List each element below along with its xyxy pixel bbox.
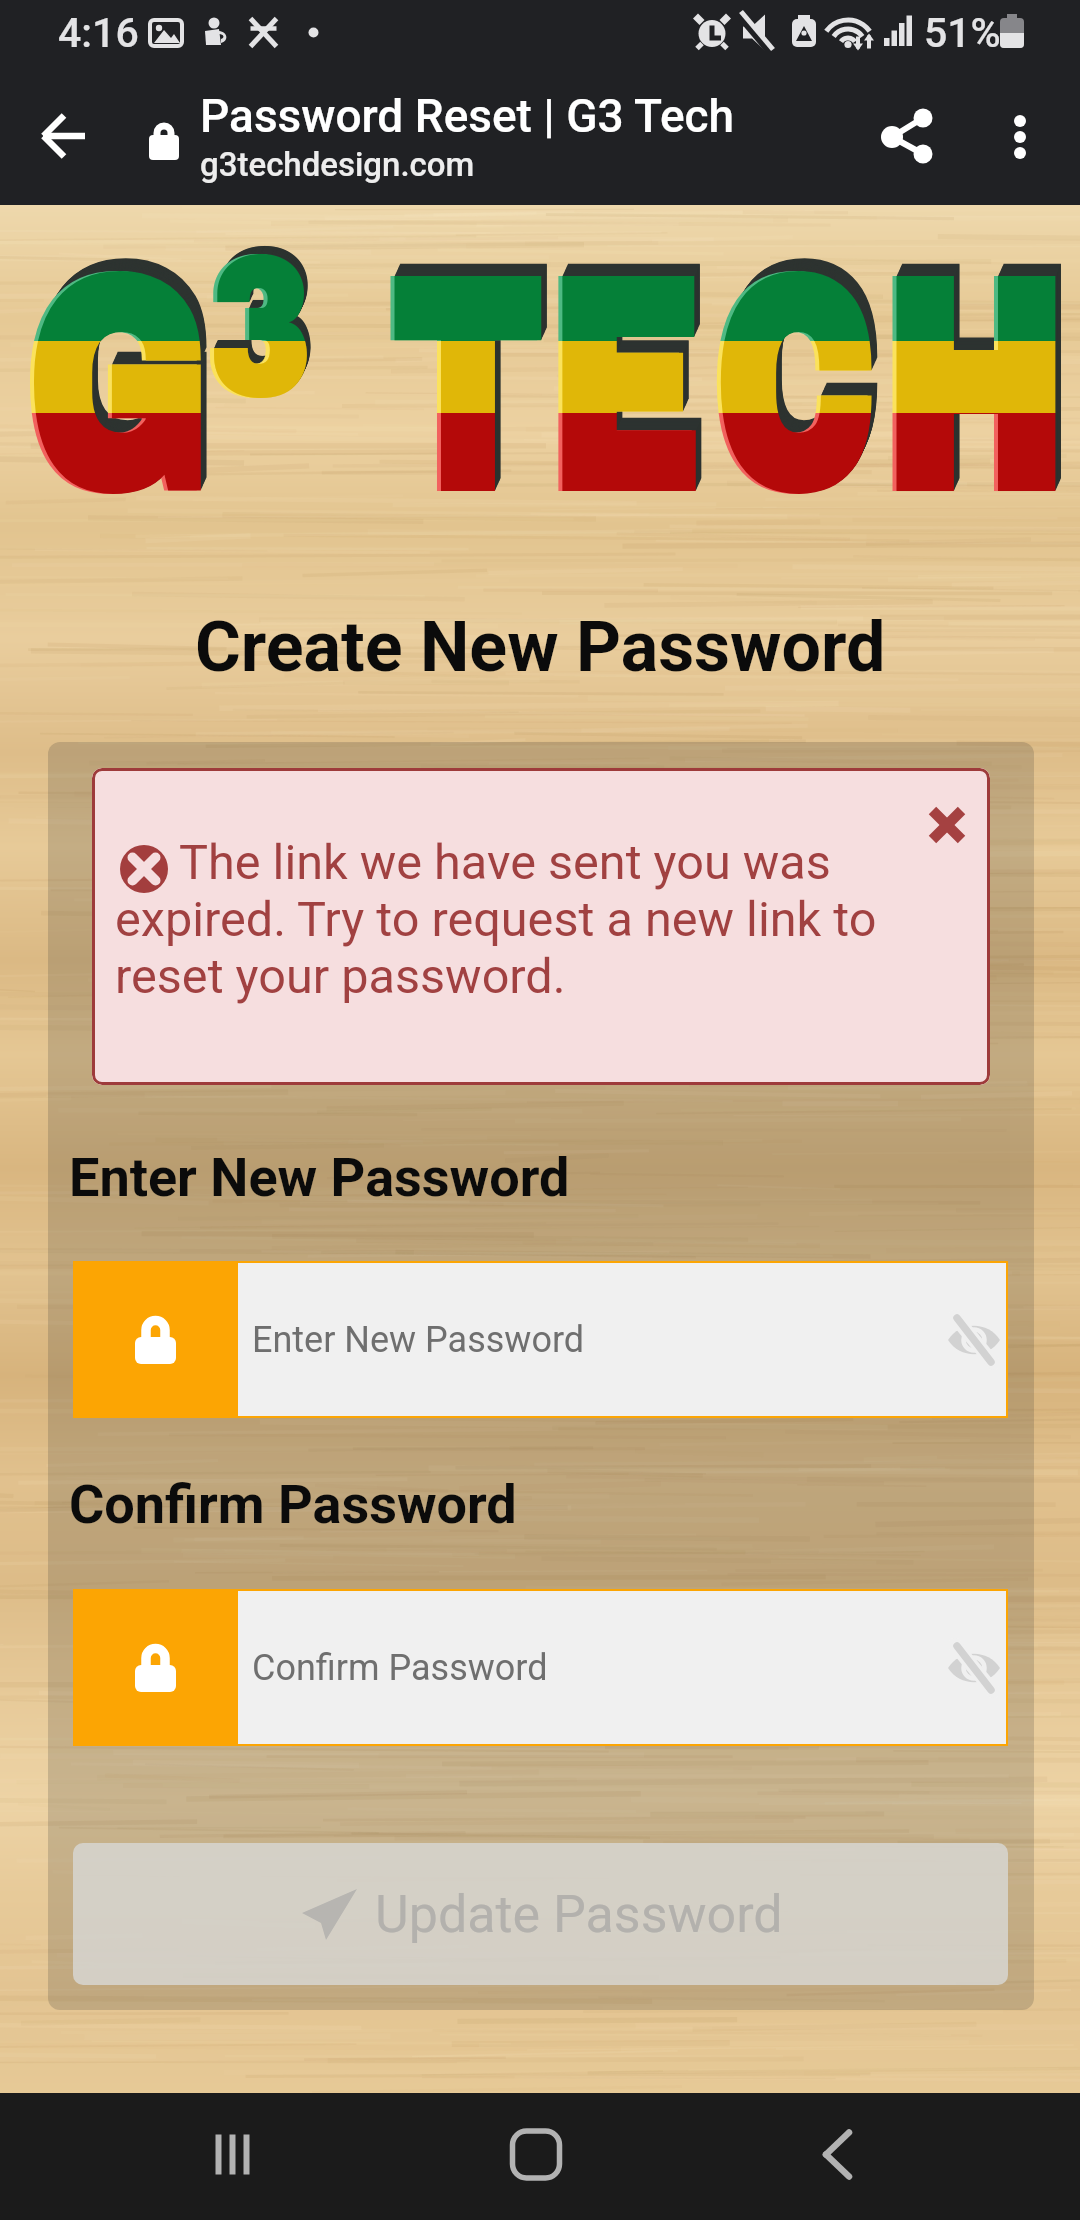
button[interactable]: Back — [777, 2093, 897, 2220]
button[interactable]: More options — [965, 75, 1080, 205]
staticText: 4:16 — [58, 9, 139, 57]
staticText: Create New Password — [195, 606, 886, 688]
button[interactable]: Home — [476, 2093, 596, 2220]
button[interactable]: Confirm Password — [73, 1589, 1008, 1746]
staticText: g3techdesign.com — [200, 145, 475, 184]
staticText: expired. Try to request a new link to — [115, 891, 877, 948]
staticText: Confirm Password — [252, 1647, 548, 1689]
staticText: 51% — [924, 9, 1001, 57]
button[interactable]: Recent apps — [172, 2093, 292, 2220]
staticText: The link we have sent you was — [179, 834, 831, 891]
button[interactable]: Dismiss alert — [903, 781, 990, 869]
staticText: Enter New Password — [252, 1319, 585, 1361]
staticText: Confirm Password — [69, 1473, 517, 1536]
button[interactable]: Update Password — [73, 1843, 1008, 1985]
button[interactable]: Share — [835, 75, 957, 205]
staticText: Password Reset | G3 Tech — [200, 89, 735, 143]
staticText: reset your password. — [115, 948, 566, 1005]
staticText: Enter New Password — [69, 1146, 570, 1209]
staticText: Update Password — [375, 1884, 783, 1945]
button[interactable]: Enter New Password — [73, 1261, 1008, 1418]
button[interactable]: Back — [0, 75, 130, 205]
